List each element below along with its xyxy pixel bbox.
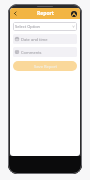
button[interactable]: Save Report — [13, 61, 77, 71]
button[interactable]: Comments — [13, 47, 77, 57]
staticText: Select Option — [15, 24, 72, 29]
button[interactable]: Profile — [69, 9, 78, 18]
button[interactable]: Back — [11, 9, 20, 18]
staticText: Save Report — [34, 64, 57, 69]
staticText: Date and time — [21, 37, 48, 42]
staticText: Report — [37, 10, 54, 17]
button[interactable]: Select Option — [13, 22, 77, 31]
button[interactable]: Date and time — [13, 34, 77, 44]
staticText: Comments — [21, 50, 42, 55]
